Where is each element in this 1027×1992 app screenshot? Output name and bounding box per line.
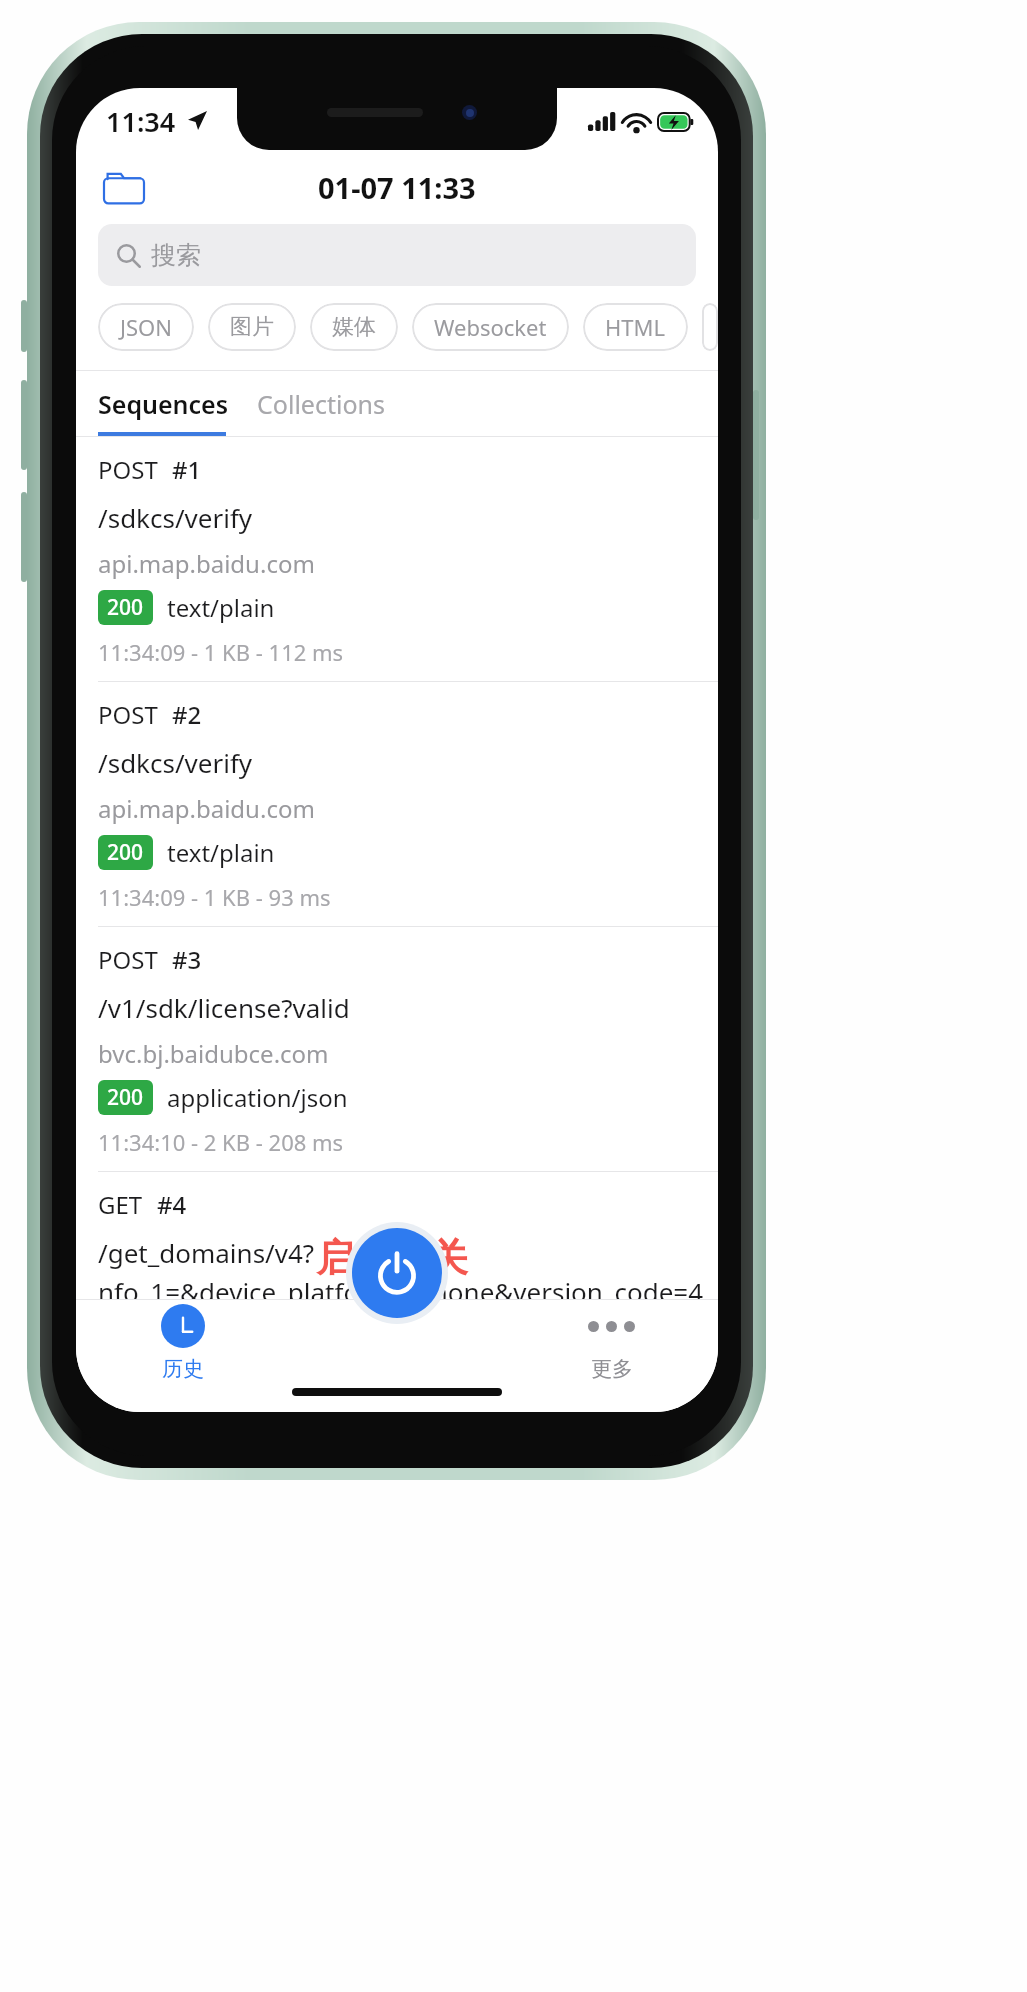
staticText: Websocket: [434, 312, 547, 342]
button[interactable]: Sequences: [98, 383, 233, 425]
button[interactable]: 媒体: [310, 303, 398, 351]
staticText: 11:34: [106, 103, 176, 140]
button[interactable]: Collections: [253, 383, 389, 425]
staticText: HTML: [605, 312, 666, 342]
staticText: 启动开关: [316, 1234, 468, 1282]
staticText: /v1/sdk/license?valid: [98, 990, 350, 1025]
staticText: 01-07 11:33: [318, 168, 476, 207]
staticText: POST: [98, 698, 158, 731]
staticText: 11:34:10 - 2 KB - 208 ms: [98, 1127, 344, 1157]
staticText: 11:34:09 - 1 KB - 112 ms: [98, 637, 344, 667]
staticText: /sdkcs/verify: [98, 745, 253, 780]
staticText: Sequences: [98, 387, 229, 421]
staticText: text/plain: [167, 591, 275, 624]
button[interactable]: JSON: [98, 303, 194, 351]
staticText: POST: [98, 943, 158, 976]
staticText: application/json: [167, 1081, 348, 1114]
staticText: 历史: [162, 1356, 204, 1382]
staticText: api.map.baidu.com: [98, 792, 315, 825]
staticText: api.map.baidu.com: [98, 547, 315, 580]
staticText: bvc.bj.baidubce.com: [98, 1037, 329, 1070]
button[interactable]: 搜索: [98, 224, 696, 286]
staticText: #2: [172, 698, 202, 731]
staticText: /sdkcs/verify: [98, 500, 253, 535]
staticText: JSON: [120, 312, 172, 342]
staticText: 200: [107, 593, 144, 622]
button[interactable]: CSS: [702, 303, 718, 351]
staticText: nfo_1=&device_platform=iphone&version_co…: [98, 1274, 704, 1309]
staticText: application/json: [167, 1365, 348, 1398]
button[interactable]: 启动开关: [352, 1228, 442, 1318]
staticText: POST: [98, 453, 158, 486]
staticText: 图片: [230, 313, 274, 341]
staticText: 更多: [591, 1356, 633, 1382]
staticText: 200: [107, 838, 144, 867]
staticText: tnc3-aliec2.snssdk.com: [98, 1321, 358, 1354]
button[interactable]: 更多: [504, 1300, 718, 1386]
staticText: GET: [98, 1188, 143, 1221]
button[interactable]: 图片: [208, 303, 296, 351]
button[interactable]: POST: [76, 682, 718, 926]
button[interactable]: HTML: [583, 303, 688, 351]
staticText: 媒体: [332, 313, 376, 341]
staticText: 200: [107, 1083, 144, 1112]
staticText: Collections: [257, 387, 385, 421]
staticText: text/plain: [167, 836, 275, 869]
staticText: #4: [157, 1188, 187, 1221]
button[interactable]: 历史: [76, 1300, 290, 1386]
staticText: 搜索: [151, 240, 201, 271]
staticText: #3: [172, 943, 202, 976]
button[interactable]: Folder: [98, 161, 150, 213]
button[interactable]: POST: [76, 927, 718, 1171]
staticText: /get_domains/v4?aid=1371&channel=app_sto…: [98, 1235, 704, 1270]
staticText: 11:34:09 - 1 KB - 93 ms: [98, 882, 331, 912]
button[interactable]: Websocket: [412, 303, 569, 351]
button[interactable]: GET: [76, 1172, 718, 1412]
button[interactable]: POST: [76, 437, 718, 681]
staticText: #1: [172, 453, 202, 486]
